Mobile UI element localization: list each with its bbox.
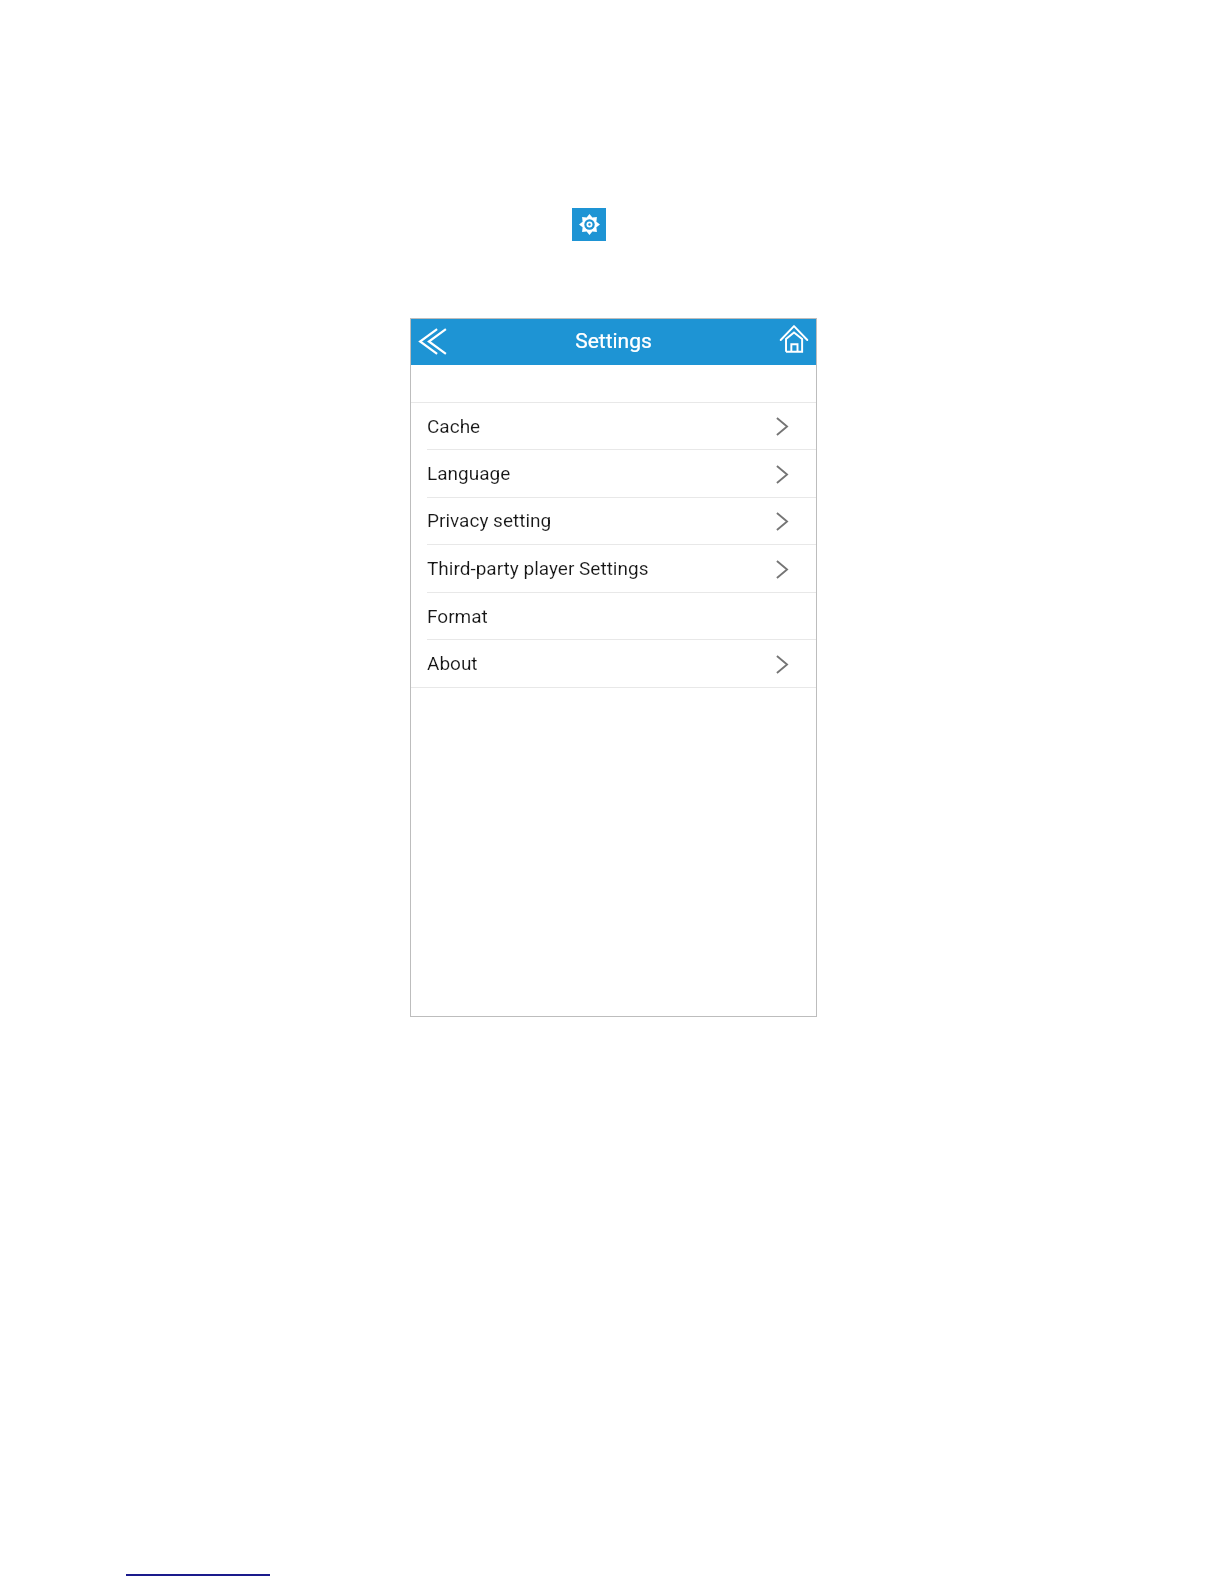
button[interactable]: Language (411, 450, 816, 498)
staticText: Cache (427, 415, 481, 437)
staticText: Settings (575, 329, 652, 354)
button[interactable]: Back (416, 324, 450, 358)
staticText: Language (427, 462, 511, 484)
button[interactable]: Cache (411, 403, 816, 450)
staticText: Third-party player Settings (427, 557, 649, 579)
button[interactable]: Format (411, 593, 816, 640)
staticText: Privacy setting (427, 509, 552, 531)
staticText: About (427, 652, 478, 674)
button[interactable]: About (411, 640, 816, 688)
staticText: Format (427, 605, 488, 627)
button[interactable]: Home (777, 322, 811, 356)
button[interactable]: Settings app icon (572, 208, 606, 241)
button[interactable]: Privacy setting (411, 497, 816, 545)
button[interactable]: Third-party player Settings (411, 545, 816, 593)
